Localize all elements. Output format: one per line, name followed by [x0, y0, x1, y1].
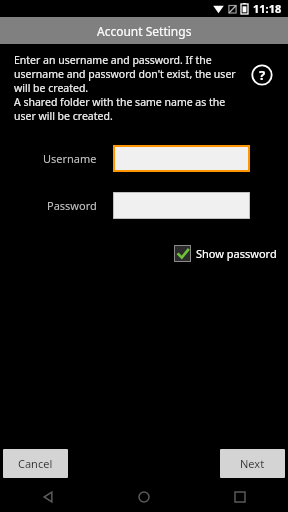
staticText: Enter an username and password. If the u… [14, 53, 236, 123]
staticText: Next [240, 456, 265, 471]
staticText: Account Settings [97, 23, 192, 39]
button[interactable]: Next [220, 449, 285, 478]
staticText: Show password [196, 246, 277, 261]
button[interactable]: Show password [174, 245, 288, 262]
button[interactable] [113, 145, 250, 172]
staticText: Cancel [18, 456, 53, 471]
staticText: 11:18 [253, 1, 282, 16]
button[interactable]: Back [0, 482, 96, 512]
staticText: Password [47, 198, 97, 213]
button[interactable]: Recent apps [192, 482, 288, 512]
staticText: ? [259, 66, 266, 84]
button[interactable] [113, 192, 250, 219]
staticText: Username [43, 151, 97, 166]
button[interactable]: Cancel [3, 449, 68, 478]
button[interactable]: Home [96, 482, 192, 512]
button[interactable]: Help [250, 63, 274, 87]
